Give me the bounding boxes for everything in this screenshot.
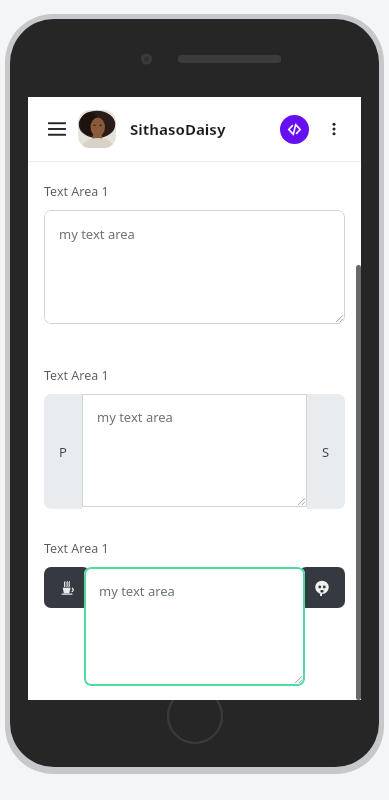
button[interactable]: my text area xyxy=(82,394,307,507)
staticText: my text area xyxy=(97,408,173,426)
staticText: my text area xyxy=(59,225,135,243)
button[interactable]: S xyxy=(307,394,345,509)
button[interactable]: GitHub xyxy=(299,567,345,608)
button[interactable]: P xyxy=(44,394,82,509)
button[interactable]: More options xyxy=(321,116,347,142)
staticText: P xyxy=(59,443,67,461)
button[interactable]: Code xyxy=(280,115,309,144)
button[interactable]: Java xyxy=(44,567,90,608)
staticText: S xyxy=(322,443,330,461)
button[interactable]: Profile xyxy=(78,110,116,148)
button[interactable]: Menu xyxy=(42,114,72,144)
staticText: Text Area 1 xyxy=(44,367,109,384)
button[interactable]: my text area xyxy=(84,567,305,686)
staticText: Text Area 1 xyxy=(44,540,109,557)
button[interactable]: my text area xyxy=(44,210,345,324)
staticText: Text Area 1 xyxy=(44,183,109,200)
staticText: my text area xyxy=(99,582,175,600)
staticText: SithasoDaisy xyxy=(130,119,226,139)
